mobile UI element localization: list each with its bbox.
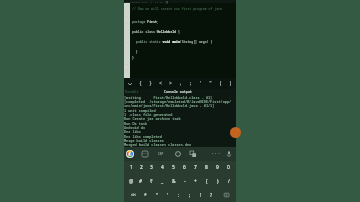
staticText: ( bbox=[219, 80, 223, 87]
staticText: Run Create jar archive task bbox=[124, 116, 181, 121]
button[interactable]: Clipboard bbox=[155, 148, 167, 160]
button[interactable]: Stickers bbox=[139, 148, 151, 160]
button[interactable]: =\< bbox=[126, 188, 140, 202]
button[interactable]: ; bbox=[184, 188, 195, 202]
staticText: ' bbox=[167, 192, 169, 199]
staticText: 1 bbox=[130, 164, 133, 171]
staticText: Run Dx task bbox=[124, 121, 148, 126]
button[interactable]: # bbox=[136, 174, 146, 188]
staticText: 2 bbox=[140, 164, 143, 171]
button[interactable]: Translate bbox=[187, 148, 199, 160]
staticText: 9 bbox=[216, 164, 219, 171]
staticText: 7 bbox=[194, 164, 197, 171]
button[interactable]: ; bbox=[186, 78, 196, 89]
button[interactable]: < bbox=[156, 78, 166, 89]
staticText: package First; bbox=[132, 20, 159, 24]
staticText: 6 bbox=[183, 164, 186, 171]
button[interactable]: - bbox=[179, 174, 190, 188]
button[interactable]: , bbox=[176, 78, 186, 89]
staticText: ₹ bbox=[150, 178, 153, 185]
button[interactable]: 6 bbox=[179, 161, 190, 174]
button[interactable]: ' bbox=[196, 78, 206, 89]
staticText: 6 bbox=[126, 40, 128, 43]
button[interactable]: 1 bbox=[126, 161, 136, 174]
staticText: Dex libs completed bbox=[124, 134, 162, 139]
button[interactable]: 4 bbox=[157, 161, 168, 174]
button[interactable]: @ bbox=[126, 174, 136, 188]
button[interactable]: ₹ bbox=[146, 174, 157, 188]
button[interactable]: ( bbox=[201, 174, 212, 188]
button[interactable]: More options bbox=[210, 148, 222, 160]
staticText: - bbox=[184, 178, 186, 185]
staticText: & bbox=[172, 178, 176, 185]
button[interactable]: Hide keyboard bbox=[124, 78, 135, 89]
button[interactable]: 0 bbox=[223, 161, 234, 174]
button[interactable]: ? bbox=[206, 188, 217, 202]
button[interactable]: & bbox=[168, 174, 179, 188]
button[interactable]: > bbox=[166, 78, 176, 89]
button[interactable]: { bbox=[135, 78, 146, 89]
staticText: // Now we will create our first program … bbox=[132, 7, 222, 11]
staticText: ) bbox=[217, 178, 219, 185]
staticText: Android dx bbox=[124, 125, 145, 130]
staticText: 1 bbox=[126, 7, 128, 10]
button[interactable]: Google bbox=[126, 150, 134, 158]
staticText: < bbox=[159, 80, 163, 87]
staticText: 8 bbox=[205, 164, 208, 171]
staticText: ? bbox=[210, 192, 213, 199]
button[interactable]: ! bbox=[195, 188, 206, 202]
staticText: [completed /storage/emulated/0/JavaNIDE/… bbox=[124, 99, 232, 104]
button[interactable]: 5 bbox=[168, 161, 179, 174]
staticText: 0 bbox=[227, 164, 230, 171]
button[interactable]: ( bbox=[216, 78, 226, 89]
staticText: public class HelloWorld { bbox=[132, 30, 180, 34]
button[interactable]: " bbox=[206, 78, 216, 89]
staticText: 5 bbox=[172, 164, 175, 171]
staticText: { bbox=[139, 80, 143, 87]
staticText: Console output bbox=[164, 89, 192, 93]
button[interactable]: Backspace bbox=[217, 188, 234, 202]
button[interactable]: " bbox=[151, 188, 162, 202]
staticText: ( bbox=[206, 178, 208, 185]
staticText: HelloWorld.java │ 12:49 ▮▮ bbox=[125, 0, 169, 3]
button[interactable]: ' bbox=[162, 188, 173, 202]
button[interactable]: * bbox=[140, 188, 151, 202]
staticText: " bbox=[156, 192, 158, 199]
staticText: 3 bbox=[126, 20, 128, 23]
staticText: [writing First/HelloWorld.class - #1] bbox=[124, 95, 213, 100]
staticText: ! bbox=[200, 192, 202, 199]
staticText: src/main/java/First/HelloWorld.java - #1… bbox=[124, 103, 215, 108]
button[interactable]: 3 bbox=[146, 161, 157, 174]
staticText: 8 bbox=[126, 56, 128, 59]
button[interactable]: ) bbox=[226, 78, 236, 89]
button[interactable]: 9 bbox=[212, 161, 223, 174]
button[interactable]: HelloWorld.java │ 12:49 ▮▮ bbox=[124, 0, 236, 3]
button[interactable]: ) bbox=[212, 174, 223, 188]
staticText: } bbox=[149, 80, 153, 87]
staticText: 10 bbox=[126, 68, 129, 71]
button[interactable]: 8 bbox=[201, 161, 212, 174]
button[interactable]: Voice input bbox=[223, 148, 235, 160]
staticText: • • • bbox=[212, 152, 220, 156]
staticText: / bbox=[228, 178, 230, 185]
button[interactable]: _ bbox=[157, 174, 168, 188]
button[interactable]: Settings bbox=[172, 148, 184, 160]
button[interactable]: 2 bbox=[136, 161, 146, 174]
button[interactable]: : bbox=[173, 188, 184, 202]
staticText: Merge build classes bbox=[124, 138, 164, 143]
staticText: : bbox=[178, 192, 180, 199]
staticText: CAP bbox=[158, 152, 164, 156]
staticText: } bbox=[132, 50, 138, 54]
staticText: * bbox=[144, 192, 147, 199]
staticText: @ bbox=[129, 178, 134, 185]
staticText: ; bbox=[189, 80, 193, 87]
button[interactable]: } bbox=[146, 78, 156, 89]
staticText: > bbox=[169, 80, 173, 87]
button[interactable]: 7 bbox=[190, 161, 201, 174]
staticText: } bbox=[132, 56, 134, 60]
button[interactable]: / bbox=[223, 174, 234, 188]
button[interactable]: Run bbox=[230, 127, 241, 138]
button[interactable]: + bbox=[190, 174, 201, 188]
staticText: 7 bbox=[126, 50, 128, 53]
staticText: 5 bbox=[126, 32, 128, 35]
